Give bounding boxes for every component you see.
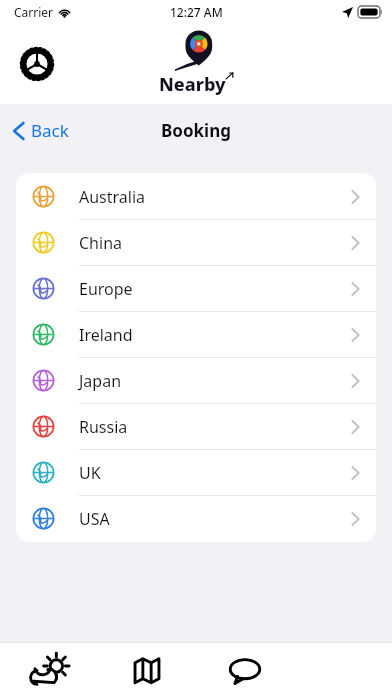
button[interactable]: Australia bbox=[16, 174, 376, 219]
button[interactable]: Map bbox=[98, 643, 196, 696]
staticText: 12:27 AM bbox=[170, 4, 223, 20]
staticText: Europe bbox=[79, 278, 133, 300]
staticText: UK bbox=[79, 462, 101, 484]
staticText: Carrier bbox=[14, 4, 54, 20]
button[interactable]: Settings bbox=[16, 43, 58, 85]
staticText: Japan bbox=[79, 370, 122, 392]
button[interactable]: Back bbox=[8, 113, 73, 148]
staticText: Ireland bbox=[79, 324, 133, 346]
staticText: China bbox=[79, 232, 122, 254]
staticText: Booking bbox=[161, 119, 231, 142]
button[interactable]: Chat bbox=[196, 643, 294, 696]
button[interactable]: USA bbox=[16, 496, 376, 541]
staticText: Back bbox=[31, 119, 69, 142]
button[interactable]: UK bbox=[16, 450, 376, 495]
button[interactable]: Russia bbox=[16, 404, 376, 449]
staticText: USA bbox=[79, 508, 110, 530]
button[interactable]: Europe bbox=[16, 266, 376, 311]
button[interactable]: Japan bbox=[16, 358, 376, 403]
button[interactable]: Weather bbox=[0, 643, 98, 696]
staticText: Australia bbox=[79, 186, 146, 208]
button[interactable]: Ireland bbox=[16, 312, 376, 357]
button[interactable]: China bbox=[16, 220, 376, 265]
staticText: Nearby bbox=[159, 72, 226, 97]
staticText: Russia bbox=[79, 416, 128, 438]
